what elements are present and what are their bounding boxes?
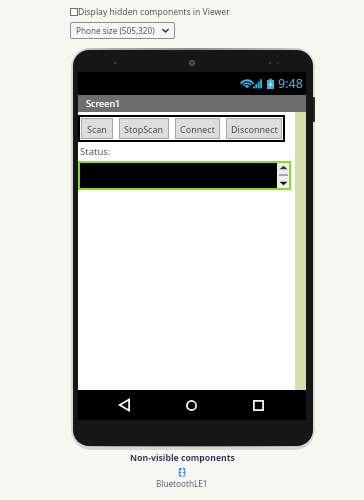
button[interactable] — [80, 163, 289, 188]
button[interactable]: Phone size (505,320) — [70, 22, 175, 39]
staticText: Connect — [180, 123, 215, 135]
staticText: Phone size (505,320) — [76, 25, 155, 36]
staticText: Disconnect — [231, 123, 278, 135]
staticText: StopScan — [124, 123, 164, 135]
staticText: Non-visible components — [130, 452, 235, 464]
staticText: BluetoothLE1 — [156, 478, 208, 489]
button[interactable]: BluetoothLE1 component — [178, 467, 186, 478]
staticText: Display hidden components in Viewer — [78, 6, 230, 18]
button[interactable] — [70, 8, 78, 16]
button[interactable]: Back — [91, 390, 158, 420]
button[interactable]: StopScan — [119, 118, 169, 139]
staticText: Scan — [87, 123, 107, 135]
button[interactable]: Disconnect — [226, 118, 282, 139]
staticText: Screen1 — [86, 97, 121, 110]
button[interactable]: Home — [158, 390, 225, 420]
button[interactable]: Recent apps — [225, 390, 292, 420]
button[interactable]: Scan — [81, 118, 113, 139]
staticText: 9:48 — [278, 75, 303, 92]
button[interactable]: Power button — [312, 97, 315, 122]
staticText: Status: — [80, 145, 111, 158]
button[interactable]: Connect — [175, 118, 220, 139]
